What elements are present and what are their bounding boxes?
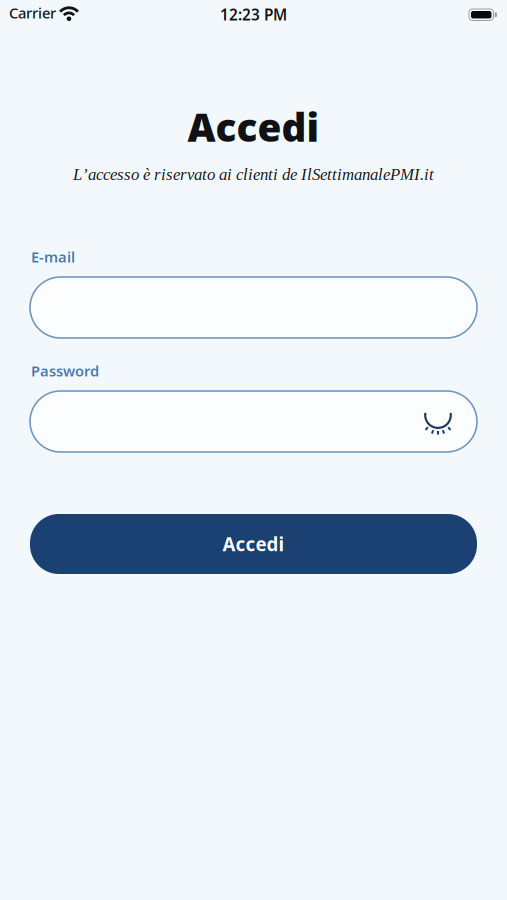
staticText: Accedi bbox=[187, 101, 319, 152]
staticText: Password bbox=[31, 361, 99, 380]
staticText: Carrier bbox=[9, 3, 56, 22]
button[interactable]: Show password bbox=[421, 406, 455, 436]
staticText: 12:23 PM bbox=[220, 4, 287, 25]
textField[interactable] bbox=[56, 292, 477, 322]
secureTextField[interactable] bbox=[56, 406, 477, 436]
staticText: L’accesso è riservato ai clienti de IlSe… bbox=[73, 165, 434, 184]
staticText: Accedi bbox=[222, 532, 284, 556]
button[interactable]: Accedi bbox=[30, 514, 477, 574]
staticText: E-mail bbox=[31, 247, 75, 266]
